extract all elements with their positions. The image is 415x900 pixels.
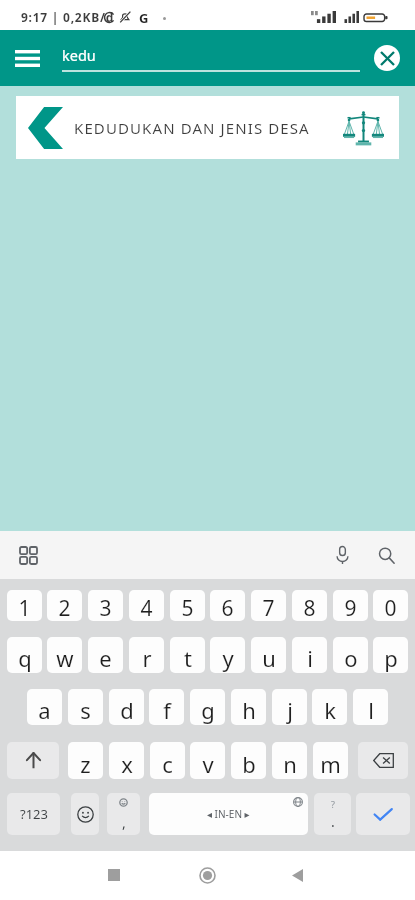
staticText: ◂ IN-EN ▸ [207,807,250,821]
button[interactable]: Space [149,793,308,835]
staticText: e [99,643,112,673]
button[interactable]: 5 [170,590,205,621]
button[interactable]: Home [183,851,231,899]
button[interactable]: Shift [7,742,59,779]
button[interactable]: s [68,689,103,725]
staticText: kedu [62,45,96,65]
staticText: o [344,643,358,673]
staticText: G [139,9,149,27]
button[interactable]: k [312,689,347,725]
button[interactable]: Menu [5,36,49,80]
staticText: 6 [221,594,234,621]
button[interactable]: l [353,689,388,725]
button[interactable]: Keyboard options [11,538,45,572]
staticText: 9 [344,594,357,621]
button[interactable]: r [129,637,164,673]
button[interactable]: 0 [373,590,408,621]
button[interactable]: 3 [88,590,123,621]
button[interactable]: Search [369,538,403,572]
button[interactable]: Enter [356,793,410,835]
button[interactable]: y [210,637,245,673]
button[interactable]: Emoji [71,793,99,835]
staticText: 0 [384,594,397,621]
staticText: g [201,695,215,725]
staticText: 8 [303,594,316,621]
button[interactable]: Voice input [325,538,359,572]
staticText: y [222,643,234,673]
staticText: m [320,749,341,779]
staticText: 4 [140,594,153,621]
staticText: 3 [99,594,112,621]
button[interactable]: m [313,742,348,779]
button[interactable]: t [170,637,205,673]
button[interactable]: Backspace [358,742,408,779]
staticText: c [162,749,173,779]
staticText: 5 [181,594,194,621]
button[interactable]: w [47,637,82,673]
button[interactable]: 4 [129,590,164,621]
staticText: t [184,643,192,673]
button[interactable]: 2 [47,590,82,621]
staticText: , [122,813,126,832]
button[interactable]: g [190,689,225,725]
button[interactable]: i [292,637,327,673]
staticText: x [121,749,133,779]
button[interactable]: Back [273,851,321,899]
button[interactable]: 6 [210,590,245,621]
staticText: j [287,695,293,725]
staticText: b [242,749,256,779]
staticText: h [242,695,256,725]
staticText: u [262,643,276,673]
button[interactable]: j [272,689,307,725]
button[interactable]: h [231,689,266,725]
button[interactable]: KEDUDUKAN DAN JENIS DESA [16,96,399,159]
staticText: i [307,643,313,673]
button[interactable]: u [251,637,286,673]
button[interactable]: ? [314,793,351,835]
staticText: k [324,695,336,725]
staticText: a [38,695,51,725]
button[interactable]: 8 [292,590,327,621]
staticText: p [384,643,398,673]
button[interactable]: q [7,637,42,673]
button[interactable]: 1 [7,590,42,621]
staticText: l [368,695,374,725]
button[interactable]: f [149,689,184,725]
staticText: s [80,695,91,725]
button[interactable]: 7 [251,590,286,621]
staticText: q [18,643,32,673]
button[interactable]: Clear search [367,38,407,78]
button[interactable]: b [231,742,266,779]
button[interactable]: c [150,742,185,779]
button[interactable]: z [68,742,103,779]
staticText: f [163,695,171,725]
staticText: d [120,695,134,725]
button[interactable]: x [109,742,144,779]
button[interactable]: 9 [333,590,368,621]
button[interactable]: a [27,689,62,725]
button[interactable]: , [107,793,140,835]
button[interactable]: n [272,742,307,779]
staticText: 7 [262,594,275,621]
staticText: z [80,749,91,779]
button[interactable]: ?123 [7,793,60,835]
staticText: n [283,749,297,779]
staticText: ?123 [20,805,48,823]
staticText: 9:17 | 0,2KB/d [21,9,114,25]
button[interactable]: d [109,689,144,725]
button[interactable]: Recents [90,851,138,899]
button[interactable]: v [190,742,225,779]
staticText: r [142,643,152,673]
staticText: w [56,643,74,673]
staticText: ? [331,798,335,810]
staticText: v [202,749,214,779]
staticText: . [331,812,335,831]
button[interactable]: o [333,637,368,673]
staticText: 2 [58,594,71,621]
button[interactable]: p [373,637,408,673]
button[interactable]: e [88,637,123,673]
staticText: KEDUDUKAN DAN JENIS DESA [74,118,310,138]
staticText: 1 [18,594,31,621]
